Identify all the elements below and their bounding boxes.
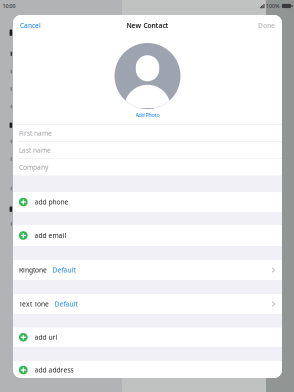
button[interactable]: Add Photo (135, 109, 159, 123)
button[interactable]: Ringtone (13, 260, 282, 280)
staticText: Ringtone (19, 266, 47, 274)
staticText: New Contact (126, 21, 168, 30)
staticText: 10:00 (3, 2, 16, 9)
button[interactable]: add address (13, 361, 282, 379)
staticText: Last name (19, 146, 51, 155)
button[interactable]: add email (13, 225, 282, 246)
staticText: Add Photo (135, 111, 159, 119)
staticText: Default (52, 266, 75, 274)
button[interactable]: Done (251, 15, 282, 36)
staticText: Done (258, 21, 275, 30)
staticText: Company (19, 163, 48, 172)
staticText: First name (19, 129, 52, 138)
staticText: add address (35, 366, 74, 374)
staticText: 100% (266, 2, 280, 9)
staticText: add email (35, 231, 67, 240)
staticText: Cancel (20, 21, 41, 30)
button[interactable]: add url (13, 327, 282, 347)
staticText: add phone (35, 198, 69, 206)
staticText: add url (35, 333, 58, 342)
staticText: Text Tone (19, 300, 49, 308)
staticText: Default (54, 300, 77, 308)
button[interactable]: Text Tone (13, 294, 282, 314)
button[interactable]: Cancel (13, 15, 48, 36)
button[interactable]: add phone (13, 192, 282, 212)
